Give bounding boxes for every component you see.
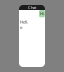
staticText: Hello [20,19,28,30]
staticText: Hi [40,11,44,16]
staticText: Chat [28,5,36,10]
